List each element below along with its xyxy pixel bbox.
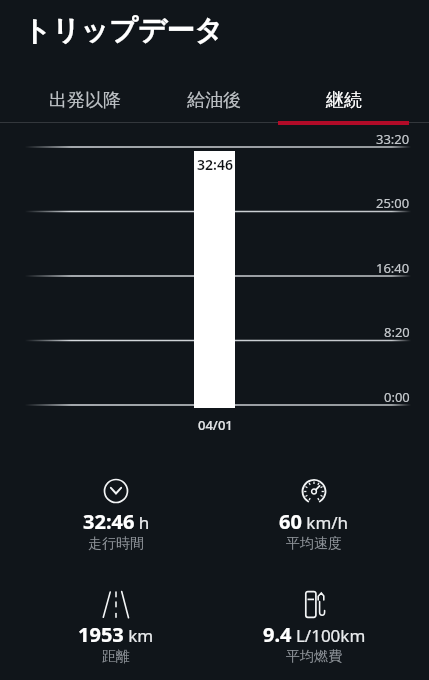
button[interactable]: 出発以降 [20, 82, 149, 118]
staticText: 33:20 [376, 130, 410, 148]
button[interactable]: 継続 [279, 82, 409, 118]
staticText: 8:20 [384, 323, 410, 341]
staticText: 1953 km [78, 621, 154, 648]
staticText: 9.4 L/100km [263, 621, 366, 648]
staticText: 走行時間 [88, 535, 144, 553]
staticText: 0:00 [384, 388, 410, 406]
staticText: 16:40 [376, 259, 410, 277]
staticText: 出発以降 [49, 89, 121, 112]
staticText: 平均速度 [286, 535, 342, 553]
staticText: 距離 [102, 648, 130, 666]
staticText: 給油後 [187, 89, 241, 112]
staticText: 継続 [326, 89, 362, 112]
staticText: 32:46 [197, 155, 233, 174]
staticText: 04/01 [198, 416, 233, 434]
staticText: トリップデータ [23, 13, 223, 48]
staticText: 32:46 h [83, 508, 150, 535]
staticText: 60 km/h [279, 508, 349, 535]
staticText: 平均燃費 [286, 648, 342, 666]
staticText: 25:00 [376, 194, 410, 212]
button[interactable]: 給油後 [149, 82, 279, 118]
